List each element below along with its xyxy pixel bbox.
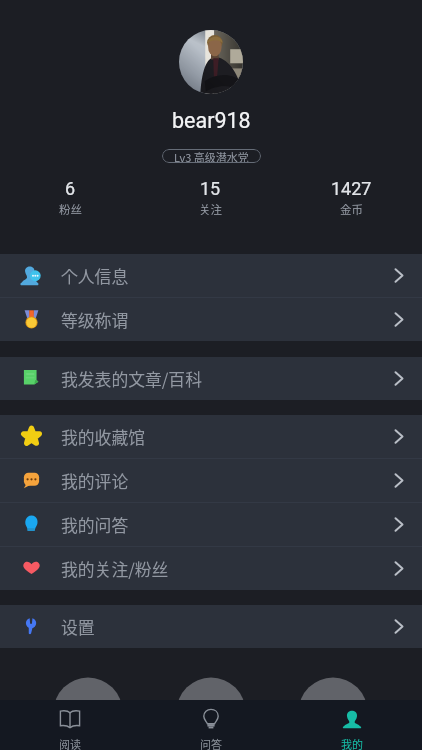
staticText: 我的关注/粉丝 — [61, 557, 169, 581]
button[interactable]: 我的收藏馆 — [0, 415, 422, 458]
staticText: 金币 — [340, 201, 363, 218]
staticText: 问答 — [200, 736, 222, 750]
button[interactable]: 等级称谓 — [0, 298, 422, 341]
staticText: 我的 — [341, 736, 363, 750]
staticText: 我发表的文章/百科 — [61, 367, 202, 391]
staticText: 个人信息 — [61, 264, 129, 288]
staticText: 阅读 — [59, 736, 81, 750]
staticText: 关注 — [199, 201, 222, 218]
staticText: 15 — [200, 178, 221, 199]
staticText: Lv3 高级潜水党 — [174, 149, 249, 163]
staticText: 6 — [65, 178, 76, 199]
button[interactable]: 阅读 — [0, 700, 140, 750]
button[interactable]: Lv3 高级潜水党 — [162, 149, 261, 163]
button[interactable]: 我的 — [281, 700, 422, 750]
button[interactable]: 我的问答 — [0, 503, 422, 546]
button[interactable]: 6 — [0, 178, 140, 218]
staticText: 等级称谓 — [61, 308, 129, 332]
staticText: 粉丝 — [59, 201, 82, 218]
button[interactable]: 1427 — [281, 178, 422, 218]
staticText: 我的收藏馆 — [61, 425, 145, 449]
staticText: 设置 — [61, 615, 95, 639]
button[interactable]: 我发表的文章/百科 — [0, 357, 422, 400]
button[interactable]: 我的关注/粉丝 — [0, 547, 422, 590]
button[interactable]: 个人信息 — [0, 254, 422, 297]
button[interactable]: 问答 — [140, 700, 281, 750]
button[interactable]: Profile photo — [179, 30, 243, 94]
button[interactable]: 15 — [140, 178, 281, 218]
staticText: 我的评论 — [61, 469, 129, 493]
button[interactable]: 设置 — [0, 605, 422, 648]
staticText: 1427 — [331, 178, 372, 199]
staticText: bear918 — [172, 108, 251, 133]
button[interactable]: 我的评论 — [0, 459, 422, 502]
staticText: 我的问答 — [61, 513, 129, 537]
